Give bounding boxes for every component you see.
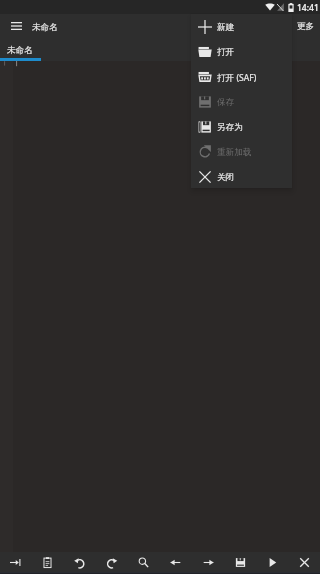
staticText: 重新加载 xyxy=(217,147,252,158)
button[interactable]: Paste xyxy=(31,552,63,572)
staticText: 另存为 xyxy=(217,122,243,133)
staticText: 打开 xyxy=(217,47,235,58)
button[interactable]: 未命名 xyxy=(0,39,41,61)
button[interactable]: 另存为 xyxy=(191,114,292,139)
button[interactable]: Close xyxy=(288,552,320,572)
button[interactable]: 更多 xyxy=(291,14,320,39)
button[interactable]: Insert tab xyxy=(0,552,31,572)
button[interactable]: 保存 xyxy=(191,89,292,114)
button[interactable]: Run xyxy=(256,552,288,572)
button[interactable]: Redo xyxy=(95,552,127,572)
button[interactable]: Menu xyxy=(7,13,26,38)
staticText: 未命名 xyxy=(7,45,33,56)
button[interactable]: 打开 xyxy=(191,39,292,64)
staticText: 保存 xyxy=(217,97,235,108)
staticText: 打开 (SAF) xyxy=(217,72,257,84)
button[interactable]: Search xyxy=(127,552,159,572)
staticText: 14:41 xyxy=(297,2,319,14)
staticText: 更多 xyxy=(297,21,314,32)
button[interactable]: 关闭 xyxy=(191,164,292,188)
button[interactable]: Move right xyxy=(192,552,224,572)
button[interactable]: Move left xyxy=(159,552,191,572)
staticText: 新建 xyxy=(217,22,235,33)
button[interactable]: Undo xyxy=(63,552,95,572)
staticText: 关闭 xyxy=(217,172,235,183)
button[interactable]: Save xyxy=(224,552,256,572)
button[interactable]: 重新加载 xyxy=(191,139,292,164)
staticText: 未命名 xyxy=(32,22,58,33)
button[interactable]: 新建 xyxy=(191,14,292,39)
button[interactable]: 打开 (SAF) xyxy=(191,64,292,89)
